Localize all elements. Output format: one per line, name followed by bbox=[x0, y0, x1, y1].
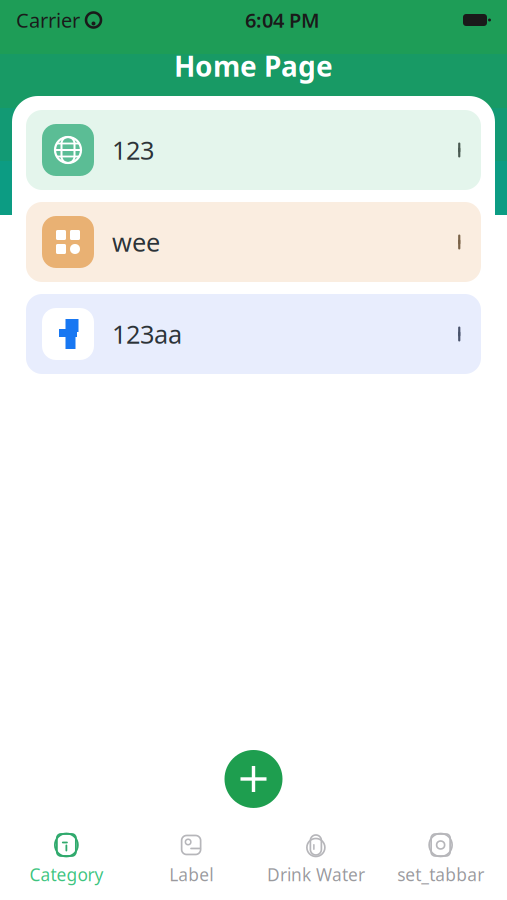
button[interactable]: 123 bbox=[26, 110, 481, 190]
staticText: 123aa bbox=[112, 317, 182, 351]
button[interactable]: Drink Water bbox=[253, 826, 378, 892]
button[interactable]: 123aa bbox=[26, 294, 481, 374]
staticText: 123 bbox=[112, 133, 154, 167]
staticText: set_tabbar bbox=[397, 863, 484, 886]
staticText: wee bbox=[112, 225, 160, 259]
button[interactable]: set_tabbar bbox=[378, 826, 503, 892]
button[interactable]: wee bbox=[26, 202, 481, 282]
staticText: Carrier bbox=[16, 7, 80, 33]
staticText: Drink Water bbox=[267, 863, 365, 886]
staticText: Label bbox=[169, 863, 213, 886]
button[interactable]: Category bbox=[4, 826, 129, 892]
staticText: Category bbox=[29, 863, 103, 886]
staticText: 6:04 PM bbox=[245, 7, 320, 33]
button[interactable]: Label bbox=[129, 826, 254, 892]
button[interactable]: Add bbox=[224, 750, 282, 808]
staticText: Home Page bbox=[174, 47, 333, 85]
